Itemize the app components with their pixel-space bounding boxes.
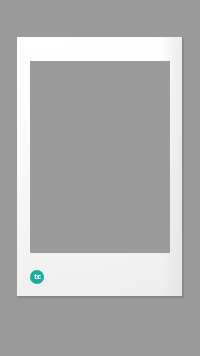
button[interactable]: tc logo [17, 37, 182, 296]
button[interactable]: tc logo [30, 270, 44, 284]
staticText: tc [34, 272, 41, 282]
